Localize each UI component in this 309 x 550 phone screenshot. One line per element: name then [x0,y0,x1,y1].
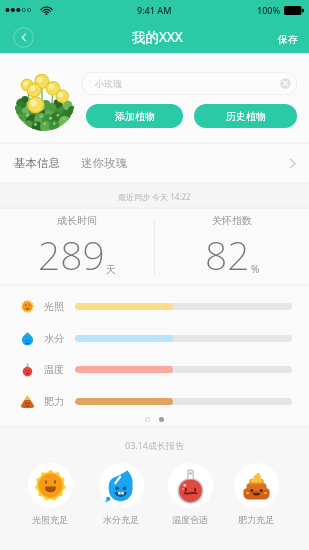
button[interactable]: Back [13,27,34,48]
button[interactable]: 基本信息 [0,143,309,183]
button[interactable]: 保存 [266,27,309,53]
staticText: 03.14成长报告 [125,439,185,451]
button[interactable]: 光照充足 [20,463,80,525]
staticText: 肥力充足 [238,514,274,525]
staticText: 最近同步 今天 14:22 [118,191,191,202]
button[interactable]: 添加植物 [86,104,183,128]
staticText: 添加植物 [115,110,155,123]
staticText: 光照 [44,300,64,313]
button[interactable]: 肥力充足 [226,463,286,525]
staticText: 关怀指数 [212,214,252,227]
button[interactable]: 水分充足 [91,463,151,525]
staticText: 天 [106,263,116,276]
button[interactable]: Clear text [280,78,291,89]
staticText: 历史植物 [226,110,266,123]
button[interactable]: 成长时间 [0,209,154,286]
staticText: 迷你玫瑰 [81,156,127,170]
button[interactable]: 关怀指数 [155,209,309,286]
staticText: 肥力 [44,395,64,408]
staticText: 82 [205,228,250,281]
staticText: 我的XXX [132,28,183,46]
staticText: 光照充足 [32,514,68,525]
staticText: 温度合适 [172,514,208,525]
staticText: 保存 [278,33,298,46]
button[interactable]: 小玫瑰 [82,72,297,95]
staticText: 基本信息 [14,156,60,170]
button[interactable]: Plant photo [14,70,75,131]
staticText: 小玫瑰 [95,78,122,89]
staticText: % [251,262,260,276]
staticText: 289 [38,228,105,281]
staticText: 100% [257,4,281,16]
staticText: 水分充足 [103,514,139,525]
staticText: 温度 [44,363,64,376]
button[interactable]: 温度合适 [160,463,220,525]
staticText: 水分 [44,332,64,345]
staticText: 9:41 AM [137,4,172,16]
staticText: 成长时间 [57,214,97,227]
button[interactable]: 历史植物 [194,104,297,128]
